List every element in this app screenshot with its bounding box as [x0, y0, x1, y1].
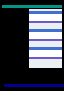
button[interactable]	[29, 29, 62, 45]
button[interactable]	[29, 11, 62, 27]
button[interactable]	[29, 47, 62, 63]
